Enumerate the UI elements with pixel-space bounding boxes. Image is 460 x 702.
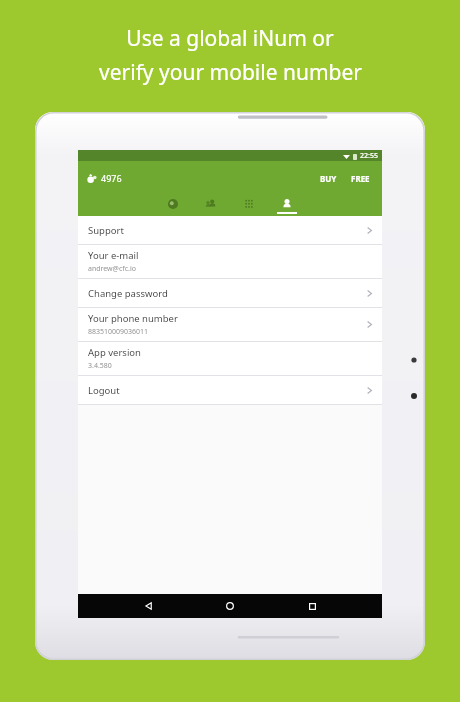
staticText: verify your mobile number <box>99 58 362 87</box>
staticText: App version <box>88 346 141 359</box>
button[interactable]: Home <box>219 595 241 617</box>
staticText: FREE <box>351 173 370 184</box>
staticText: Logout <box>88 384 120 397</box>
staticText: Change password <box>88 287 168 300</box>
button[interactable]: Your e-mail <box>78 245 382 279</box>
button[interactable]: BUY <box>316 170 341 187</box>
staticText: 22:55 <box>360 151 378 161</box>
button[interactable]: Change password <box>78 279 382 308</box>
button[interactable]: App version <box>78 342 382 376</box>
button[interactable]: Your phone number <box>78 308 382 342</box>
button[interactable]: Keypad <box>236 195 262 216</box>
staticText: Your phone number <box>88 312 178 325</box>
button[interactable]: Logout <box>78 376 382 405</box>
button[interactable]: Account <box>274 195 300 216</box>
staticText: andrew@cfc.io <box>88 264 136 274</box>
button[interactable]: Recents <box>301 595 323 617</box>
button[interactable]: FREE <box>347 170 374 187</box>
button[interactable]: Support <box>78 216 382 245</box>
staticText: Your e-mail <box>88 249 139 262</box>
staticText: BUY <box>320 173 337 184</box>
button[interactable]: Contacts <box>198 195 224 216</box>
button[interactable]: Back <box>138 595 160 617</box>
staticText: Use a global iNum or <box>126 24 334 53</box>
staticText: 3.4.580 <box>88 361 112 371</box>
staticText: 883510009036011 <box>88 327 149 337</box>
button[interactable]: Dialer <box>160 195 186 216</box>
button[interactable]: Credit balance <box>86 172 122 184</box>
staticText: 4976 <box>101 172 122 184</box>
staticText: Support <box>88 224 124 237</box>
